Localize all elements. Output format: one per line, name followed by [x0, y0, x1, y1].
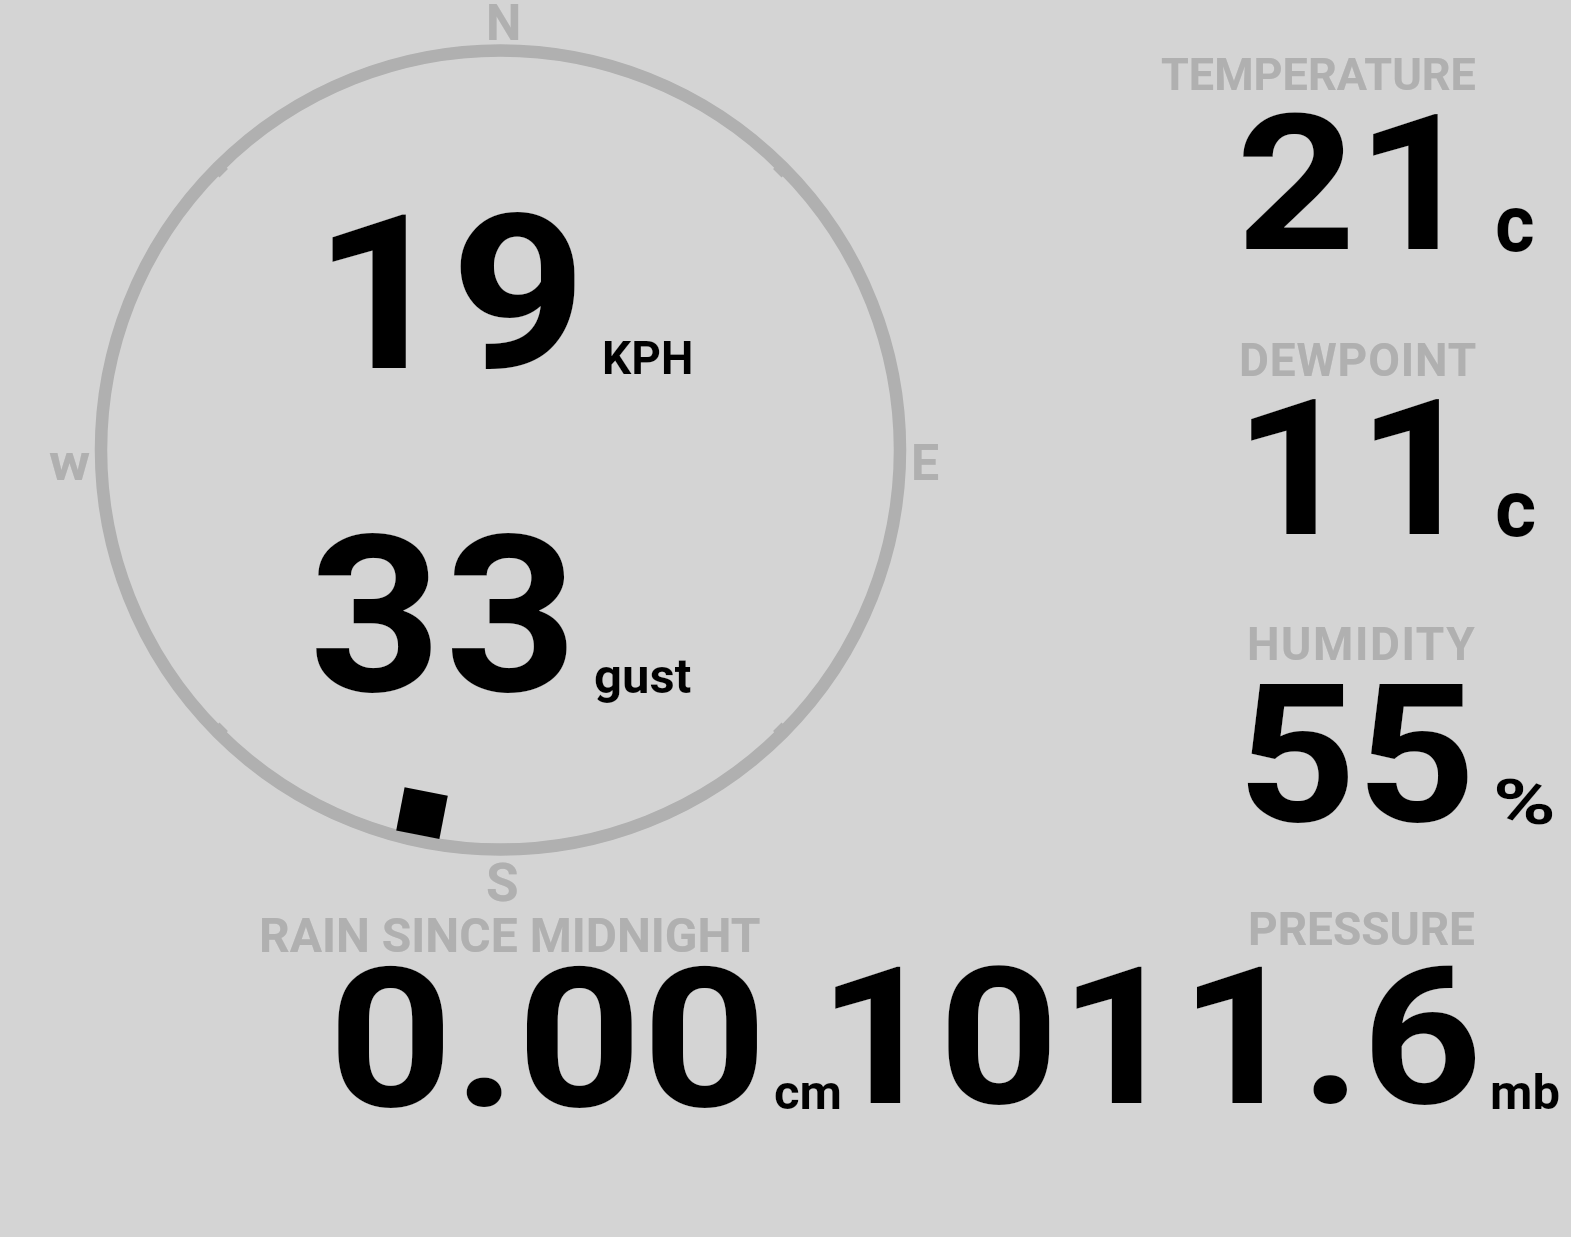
button[interactable]: Temperature 21 c [1150, 40, 1571, 300]
button[interactable]: Dewpoint 11 c [1150, 325, 1571, 585]
staticText: PRESSURE [1248, 902, 1475, 956]
button[interactable]: Rain since midnight 0.00 cm [250, 895, 820, 1125]
staticText: DEWPOINT [1239, 333, 1478, 387]
staticText: TEMPERATURE [1161, 48, 1476, 101]
staticText: 33 [309, 488, 581, 745]
staticText: S [486, 852, 519, 914]
staticText: 1011.6 [818, 925, 1483, 1150]
button[interactable]: Humidity 55 percent [1150, 610, 1571, 870]
staticText: w [49, 434, 90, 493]
staticText: HUMIDITY [1247, 617, 1477, 671]
staticText: E [911, 434, 940, 493]
staticText: 0.00 [328, 926, 768, 1153]
staticText: 11 [1234, 358, 1481, 581]
staticText: c [1495, 177, 1535, 271]
staticText: 19 [313, 168, 588, 421]
staticText: RAIN SINCE MIDNIGHT [259, 907, 761, 963]
staticText: gust [594, 648, 692, 705]
staticText: cm [774, 1064, 842, 1121]
button[interactable]: Pressure 1011.6 mb [820, 895, 1571, 1125]
staticText: KPH [602, 331, 694, 385]
staticText: 55 [1237, 642, 1477, 868]
staticText: N [486, 0, 522, 53]
staticText: % [1493, 766, 1556, 840]
staticText: c [1495, 463, 1537, 556]
staticText: mb [1490, 1064, 1561, 1121]
staticText: 21 [1236, 73, 1477, 296]
button[interactable]: Wind 19 KPH, gust 33 [95, 45, 907, 857]
